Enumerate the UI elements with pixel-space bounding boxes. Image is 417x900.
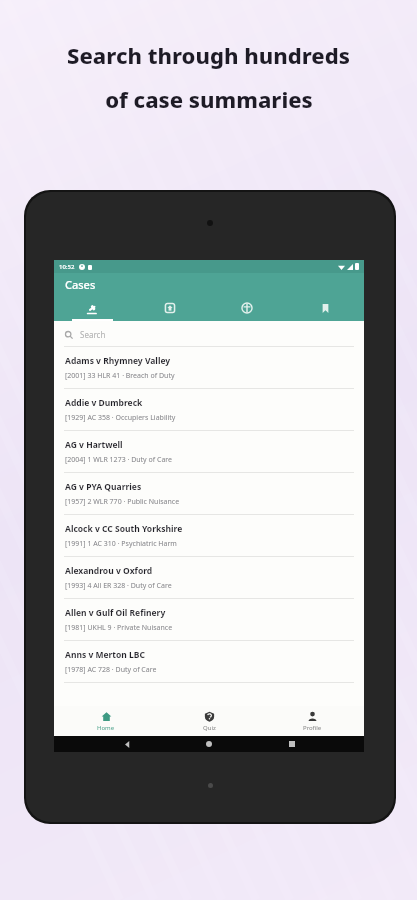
button[interactable]: Recent apps — [282, 736, 302, 752]
staticText: Search through hundreds — [67, 40, 350, 70]
button[interactable]: Anns v Merton LBC — [54, 641, 364, 683]
staticText: Addie v Dumbreck — [65, 397, 143, 409]
staticText: [1993] 4 All ER 328 · Duty of Care — [65, 581, 172, 591]
staticText: Anns v Merton LBC — [65, 649, 145, 661]
button[interactable]: Quiz — [158, 706, 261, 736]
staticText: Cases — [65, 277, 96, 292]
staticText: Allen v Gulf Oil Refinery — [65, 607, 166, 619]
staticText: Alexandrou v Oxford — [65, 565, 153, 577]
button[interactable]: Search — [54, 321, 364, 347]
staticText: of case summaries — [105, 84, 313, 114]
staticText: [2004] 1 WLR 1273 · Duty of Care — [65, 455, 173, 465]
button[interactable]: Addie v Dumbreck — [54, 389, 364, 431]
button[interactable]: AG v PYA Quarries — [54, 473, 364, 515]
button[interactable]: Allen v Gulf Oil Refinery — [54, 599, 364, 641]
button[interactable]: Nuisance tab — [208, 295, 286, 321]
staticText: [1929] AC 358 · Occupiers Liability — [65, 413, 176, 423]
button[interactable]: Alcock v CC South Yorkshire — [54, 515, 364, 557]
button[interactable]: AG v Hartwell — [54, 431, 364, 473]
button[interactable]: Home — [199, 736, 219, 752]
staticText: [2001] 33 HLR 41 · Breach of Duty — [65, 371, 175, 381]
button[interactable]: Adams v Rhymney Valley — [54, 347, 364, 389]
button[interactable]: Cases tab — [54, 295, 131, 321]
button[interactable]: Occupiers tab — [131, 295, 208, 321]
staticText: [1981] UKHL 9 · Private Nuisance — [65, 623, 173, 633]
staticText: Quiz — [203, 724, 216, 732]
staticText: Profile — [303, 724, 322, 732]
button[interactable]: Home — [54, 706, 158, 736]
button[interactable]: Alexandrou v Oxford — [54, 557, 364, 599]
staticText: [1957] 2 WLR 770 · Public Nuisance — [65, 497, 180, 507]
staticText: AG v PYA Quarries — [65, 481, 142, 493]
staticText: Alcock v CC South Yorkshire — [65, 523, 183, 535]
staticText: [1978] AC 728 · Duty of Care — [65, 665, 157, 675]
staticText: [1991] 1 AC 310 · Psychiatric Harm — [65, 539, 177, 549]
staticText: Search — [80, 329, 106, 340]
button[interactable]: Back — [117, 736, 137, 752]
button[interactable]: Bookmarks tab — [286, 295, 364, 321]
staticText: Home — [97, 724, 115, 732]
staticText: 10:52 — [59, 263, 75, 271]
staticText: Adams v Rhymney Valley — [65, 355, 171, 367]
button[interactable]: Profile — [261, 706, 364, 736]
staticText: AG v Hartwell — [65, 439, 123, 451]
